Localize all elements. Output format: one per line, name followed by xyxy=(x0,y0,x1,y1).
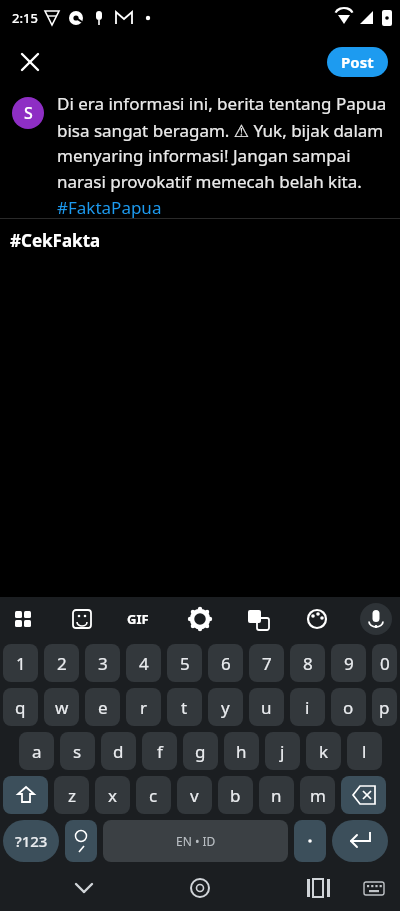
staticText: x xyxy=(108,784,117,807)
button[interactable]: S xyxy=(0,88,400,218)
staticText: e xyxy=(98,696,108,719)
staticText: u xyxy=(261,696,272,719)
staticText: 3 xyxy=(98,652,108,675)
staticText: y xyxy=(221,696,230,719)
button[interactable] xyxy=(65,820,97,862)
button[interactable] xyxy=(341,776,386,814)
button[interactable]: x xyxy=(95,776,130,814)
staticText: d xyxy=(113,740,124,763)
button[interactable]: e xyxy=(85,688,120,726)
staticText: g xyxy=(195,740,206,763)
button[interactable] xyxy=(294,820,326,862)
staticText: f xyxy=(157,740,163,763)
button[interactable]: 3 xyxy=(85,644,120,682)
staticText: Post xyxy=(341,52,374,72)
button[interactable]: u xyxy=(249,688,284,726)
button[interactable]: i xyxy=(290,688,325,726)
button[interactable]: o xyxy=(331,688,366,726)
staticText: 0 xyxy=(380,652,390,675)
staticText: 2 xyxy=(57,652,67,675)
staticText: b xyxy=(230,784,241,807)
button[interactable]: 1 xyxy=(3,644,38,682)
button[interactable]: f xyxy=(142,732,177,770)
staticText: k xyxy=(319,740,329,763)
button[interactable]: b xyxy=(218,776,253,814)
staticText: EN • ID xyxy=(176,833,216,849)
staticText: v xyxy=(190,784,199,807)
staticText: s xyxy=(73,740,82,763)
button[interactable]: a xyxy=(19,732,54,770)
button[interactable]: 0 xyxy=(372,644,397,682)
staticText: p xyxy=(379,696,390,719)
button[interactable]: q xyxy=(3,688,38,726)
staticText: 1 xyxy=(16,652,26,675)
staticText: 8 xyxy=(303,652,313,675)
staticText: l xyxy=(362,740,367,763)
button[interactable]: t xyxy=(167,688,202,726)
button[interactable] xyxy=(332,820,388,862)
staticText: j xyxy=(280,740,285,763)
button[interactable]: 7 xyxy=(249,644,284,682)
button[interactable]: ?123 xyxy=(3,820,59,862)
staticText: n xyxy=(271,784,282,807)
staticText: Di era informasi ini, berita tentang Pap… xyxy=(57,92,392,218)
button[interactable]: m xyxy=(300,776,335,814)
button[interactable]: Close xyxy=(10,42,50,82)
button[interactable]: 4 xyxy=(126,644,161,682)
button[interactable]: Post xyxy=(327,47,388,77)
staticText: 2:15 xyxy=(12,9,38,27)
button[interactable]: l xyxy=(347,732,382,770)
staticText: GIF xyxy=(127,610,149,628)
staticText: q xyxy=(15,696,26,719)
button[interactable]: 6 xyxy=(208,644,243,682)
staticText: t xyxy=(181,696,188,719)
button[interactable]: k xyxy=(306,732,341,770)
button[interactable]: r xyxy=(126,688,161,726)
button[interactable]: c xyxy=(136,776,171,814)
staticText: w xyxy=(55,696,69,719)
button[interactable]: d xyxy=(101,732,136,770)
staticText: r xyxy=(140,696,148,719)
button[interactable]: p xyxy=(372,688,397,726)
staticText: 9 xyxy=(344,652,354,675)
staticText: 6 xyxy=(221,652,231,675)
staticText: 7 xyxy=(262,652,272,675)
button[interactable]: 2 xyxy=(44,644,79,682)
staticText: 4 xyxy=(139,652,149,675)
button[interactable]: y xyxy=(208,688,243,726)
staticText: z xyxy=(68,784,76,807)
button[interactable]: n xyxy=(259,776,294,814)
button[interactable]: h xyxy=(224,732,259,770)
button[interactable]: 9 xyxy=(331,644,366,682)
staticText: i xyxy=(305,696,310,719)
staticText: m xyxy=(310,784,326,807)
staticText: h xyxy=(236,740,247,763)
button[interactable]: EN • ID xyxy=(103,820,288,862)
button[interactable]: 8 xyxy=(290,644,325,682)
button[interactable]: j xyxy=(265,732,300,770)
button[interactable]: z xyxy=(54,776,89,814)
button[interactable]: 5 xyxy=(167,644,202,682)
staticText: 5 xyxy=(180,652,190,675)
staticText: o xyxy=(343,696,354,719)
button[interactable]: w xyxy=(44,688,79,726)
staticText: #CekFakta xyxy=(10,229,101,252)
button[interactable]: g xyxy=(183,732,218,770)
staticText: ?123 xyxy=(15,831,48,851)
button[interactable] xyxy=(3,776,48,814)
staticText: a xyxy=(32,740,42,763)
staticText: S xyxy=(24,102,33,124)
button[interactable]: s xyxy=(60,732,95,770)
button[interactable]: v xyxy=(177,776,212,814)
staticText: c xyxy=(149,784,158,807)
